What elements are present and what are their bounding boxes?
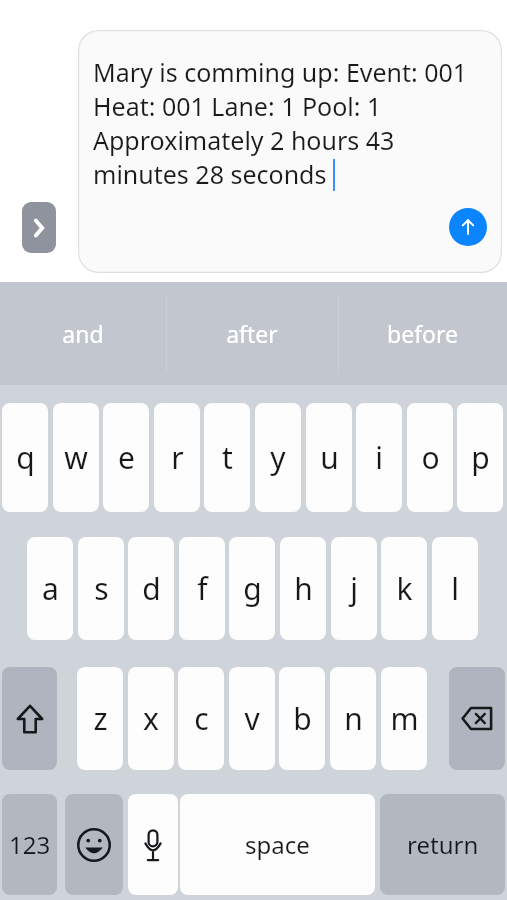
button[interactable]: Delete <box>449 667 505 770</box>
staticText: v <box>244 698 260 739</box>
button[interactable]: c <box>178 667 224 770</box>
button[interactable]: a <box>27 537 73 640</box>
staticText: w <box>64 437 88 478</box>
button[interactable]: Expand app drawer <box>22 202 56 253</box>
button[interactable]: s <box>78 537 124 640</box>
button[interactable]: before <box>338 282 507 385</box>
button[interactable]: y <box>255 403 301 512</box>
button[interactable]: e <box>103 403 149 512</box>
button[interactable]: k <box>381 537 427 640</box>
button[interactable]: space <box>180 794 375 895</box>
button[interactable]: d <box>128 537 174 640</box>
staticText: p <box>471 437 490 478</box>
staticText: h <box>294 568 313 609</box>
button[interactable]: b <box>279 667 325 770</box>
staticText: u <box>320 437 339 478</box>
button[interactable]: w <box>53 403 99 512</box>
staticText: before <box>387 318 458 349</box>
staticText: return <box>407 828 479 861</box>
staticText: e <box>118 437 135 478</box>
staticText: Mary is comming up: Event: 001 <box>93 55 468 89</box>
button[interactable]: Mary is comming up: Event: 001 <box>78 30 502 273</box>
staticText: z <box>93 698 108 739</box>
staticText: d <box>142 568 161 609</box>
button[interactable]: after <box>166 282 338 385</box>
staticText: after <box>226 318 278 349</box>
staticText: t <box>222 437 233 478</box>
staticText: a <box>42 568 59 609</box>
button[interactable]: o <box>407 403 453 512</box>
button[interactable]: Emoji <box>65 794 123 895</box>
staticText: n <box>344 698 363 739</box>
staticText: o <box>421 437 440 478</box>
button[interactable]: t <box>204 403 250 512</box>
button[interactable]: 123 <box>2 794 57 895</box>
button[interactable]: Shift <box>2 667 57 770</box>
staticText: f <box>197 568 208 609</box>
button[interactable]: z <box>77 667 123 770</box>
button[interactable]: Voice input <box>128 794 178 895</box>
button[interactable]: h <box>280 537 326 640</box>
button[interactable]: f <box>179 537 225 640</box>
staticText: m <box>390 698 419 739</box>
button[interactable]: j <box>331 537 377 640</box>
staticText: i <box>375 437 383 478</box>
staticText: j <box>350 568 358 609</box>
staticText: minutes 28 seconds <box>93 157 333 191</box>
button[interactable]: g <box>229 537 275 640</box>
button[interactable]: n <box>330 667 376 770</box>
staticText: q <box>16 437 35 478</box>
staticText: y <box>270 437 286 478</box>
button[interactable]: return <box>380 794 505 895</box>
staticText: 123 <box>9 828 51 861</box>
staticText: Approximately 2 hours 43 <box>93 123 395 157</box>
button[interactable]: x <box>128 667 174 770</box>
button[interactable]: p <box>457 403 503 512</box>
staticText: Heat: 001 Lane: 1 Pool: 1 <box>93 89 382 123</box>
staticText: and <box>62 318 104 349</box>
staticText: space <box>245 828 310 861</box>
staticText: g <box>243 568 262 609</box>
button[interactable]: i <box>356 403 402 512</box>
button[interactable]: Send <box>449 208 487 246</box>
button[interactable]: r <box>154 403 200 512</box>
staticText: s <box>94 568 109 609</box>
staticText: r <box>171 437 184 478</box>
staticText: k <box>396 568 413 609</box>
button[interactable]: m <box>381 667 427 770</box>
button[interactable]: and <box>0 282 166 385</box>
button[interactable]: q <box>2 403 48 512</box>
staticText: l <box>451 568 459 609</box>
button[interactable]: u <box>306 403 352 512</box>
button[interactable]: v <box>229 667 275 770</box>
staticText: b <box>293 698 312 739</box>
button[interactable]: l <box>432 537 478 640</box>
staticText: c <box>194 698 209 739</box>
staticText: x <box>143 698 159 739</box>
